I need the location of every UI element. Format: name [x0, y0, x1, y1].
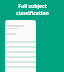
staticText: Full subject — [18, 3, 47, 10]
staticText: classification — [16, 10, 49, 17]
